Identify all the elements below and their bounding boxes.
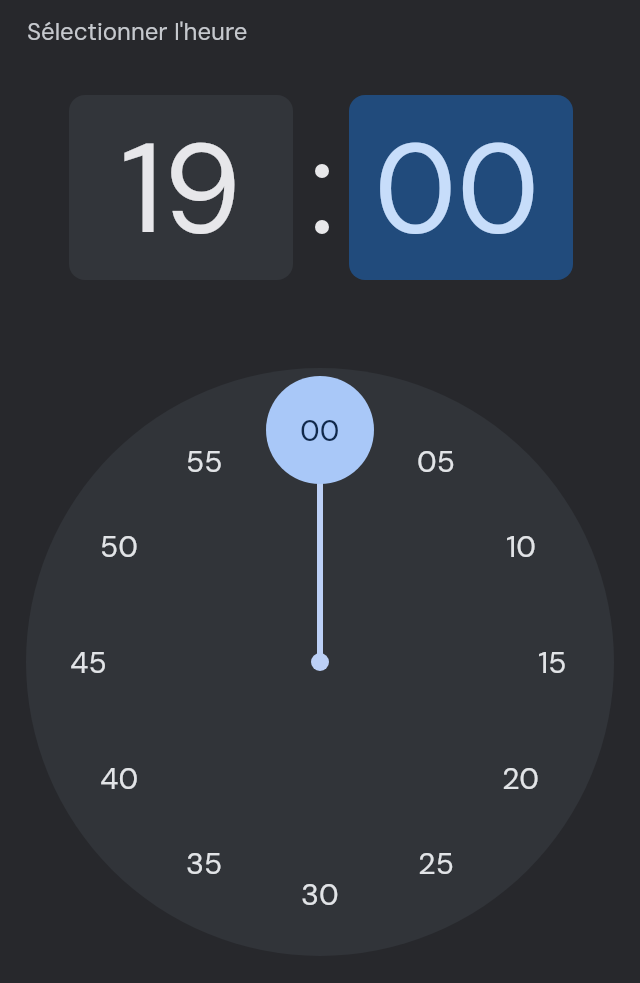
button[interactable]: 30 [280, 872, 360, 916]
staticText: 00 [300, 411, 340, 450]
button[interactable]: 15 [512, 640, 592, 684]
staticText: 45 [70, 643, 107, 682]
button[interactable]: 55 [164, 439, 244, 483]
button[interactable]: 19 [69, 95, 293, 280]
staticText: 00 [374, 107, 540, 271]
staticText: 10 [506, 527, 536, 566]
staticText: 40 [100, 759, 139, 798]
button[interactable]: 50 [79, 524, 159, 568]
button[interactable]: 05 [396, 439, 476, 483]
button[interactable]: 40 [79, 756, 159, 800]
staticText: 35 [186, 844, 223, 883]
staticText: Sélectionner l'heure [27, 16, 248, 47]
staticText: 19 [120, 107, 242, 271]
staticText: 50 [100, 527, 138, 566]
button[interactable]: 35 [164, 841, 244, 885]
staticText: 15 [538, 643, 567, 682]
button[interactable]: 45 [48, 640, 128, 684]
staticText: 05 [417, 442, 455, 481]
button[interactable]: 00 [266, 376, 374, 484]
staticText: 25 [418, 844, 454, 883]
button[interactable]: 25 [396, 841, 476, 885]
button[interactable]: 20 [481, 756, 561, 800]
button[interactable]: 10 [481, 524, 561, 568]
staticText: 30 [301, 875, 339, 914]
staticText: 20 [502, 759, 540, 798]
button[interactable]: 00 [349, 95, 573, 280]
staticText: 55 [186, 442, 223, 481]
